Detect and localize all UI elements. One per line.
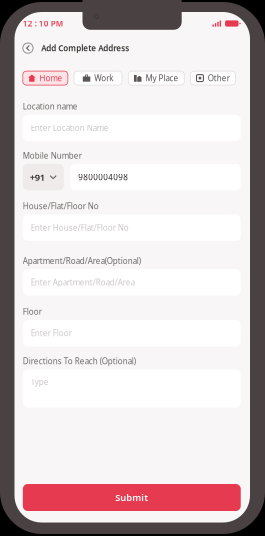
staticText: Enter Location Name: [31, 123, 109, 133]
button[interactable]: Enter Location Name: [23, 115, 241, 141]
staticText: Work: [94, 73, 113, 83]
button[interactable]: Back: [23, 43, 33, 53]
button[interactable]: Home: [23, 71, 68, 85]
button[interactable]: +91: [23, 164, 64, 190]
staticText: Type: [31, 376, 49, 387]
staticText: Floor: [23, 306, 42, 317]
staticText: Home: [40, 73, 63, 83]
button[interactable]: My Place: [128, 71, 184, 85]
button[interactable]: Work: [74, 71, 122, 85]
button[interactable]: Enter Floor: [23, 320, 241, 346]
staticText: 12 : 10 PM: [23, 18, 63, 29]
button[interactable]: Enter Apartment/Road/Area: [23, 269, 241, 296]
staticText: +91: [30, 171, 45, 183]
button[interactable]: Enter House/Flat/Floor No: [23, 214, 241, 241]
staticText: House/Flat/Floor No: [23, 201, 99, 211]
staticText: 9800004098: [78, 172, 128, 182]
staticText: Mobile Number: [23, 150, 82, 161]
staticText: Other: [208, 73, 230, 83]
staticText: Apartment/Road/Area(Optional): [23, 255, 141, 266]
staticText: Enter Apartment/Road/Area: [31, 277, 135, 288]
staticText: Enter House/Flat/Floor No: [31, 222, 129, 233]
staticText: Directions To Reach (Optional): [23, 356, 136, 366]
button[interactable]: Other: [190, 71, 235, 85]
staticText: Location name: [23, 101, 78, 112]
button[interactable]: 9800004098: [70, 164, 241, 190]
button[interactable]: Submit: [23, 484, 241, 511]
staticText: Submit: [115, 491, 148, 504]
staticText: Enter Floor: [31, 328, 72, 339]
staticText: My Place: [145, 73, 178, 83]
staticText: Add Complete Address: [41, 43, 129, 53]
